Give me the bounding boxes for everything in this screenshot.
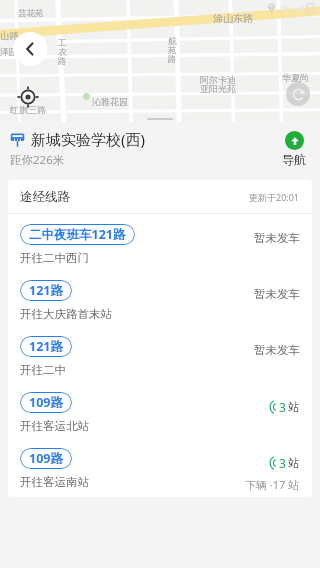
staticText: 暂未发车 [254, 343, 300, 357]
staticText: 开往客运南站 [20, 475, 89, 489]
staticText: 航 苑 路 [168, 36, 177, 64]
staticText: 泽园 [0, 47, 17, 58]
staticText: 站 [288, 456, 300, 470]
button[interactable]: 返回 [13, 32, 47, 66]
staticText: 121路 [29, 282, 63, 299]
staticText: 更新于20:01 [249, 191, 300, 203]
staticText: 导航 [282, 152, 306, 167]
staticText: 工 农 路 [58, 38, 67, 66]
button[interactable]: 109路 [8, 438, 312, 497]
button[interactable]: 121路 [8, 270, 312, 326]
staticText: 二中夜班车121路 [29, 226, 126, 243]
button[interactable]: 我的位置 [17, 86, 39, 108]
button[interactable]: 导航 [280, 131, 308, 167]
button[interactable]: 刷新 [286, 82, 310, 106]
staticText: 下辆 ·17 站 [245, 477, 300, 492]
staticText: 站 [288, 400, 300, 414]
staticText: 红旗三路 [10, 104, 46, 115]
staticText: 沁雅花园 [92, 96, 128, 107]
staticText: 109路 [29, 450, 63, 467]
staticText: 途经线路 [20, 189, 70, 205]
staticText: 暂未发车 [254, 231, 300, 245]
button[interactable]: 二中夜班车121路 [8, 214, 312, 270]
staticText: 开往二中 [20, 363, 66, 377]
staticText: 芸花苑 [18, 8, 44, 19]
staticText: 阿尔卡迪 亚阳光苑 [200, 74, 236, 95]
staticText: 距你226米 [10, 152, 65, 168]
staticText: 山路 [0, 30, 19, 42]
staticText: 开往二中西门 [20, 251, 89, 265]
staticText: 3 [279, 455, 286, 471]
staticText: 开往大庆路首末站 [20, 307, 112, 321]
staticText: 华夏尚 [282, 72, 309, 83]
staticText: 121路 [29, 338, 63, 355]
button[interactable]: 109路 [8, 382, 312, 438]
staticText: 暂未发车 [254, 287, 300, 301]
staticText: 开往客运北站 [20, 419, 89, 433]
staticText: 涂山东路 [213, 12, 253, 25]
staticText: 109路 [29, 394, 63, 411]
staticText: 3 [279, 399, 286, 415]
staticText: 新城实验学校(西) [31, 129, 146, 149]
button[interactable]: 121路 [8, 326, 312, 382]
